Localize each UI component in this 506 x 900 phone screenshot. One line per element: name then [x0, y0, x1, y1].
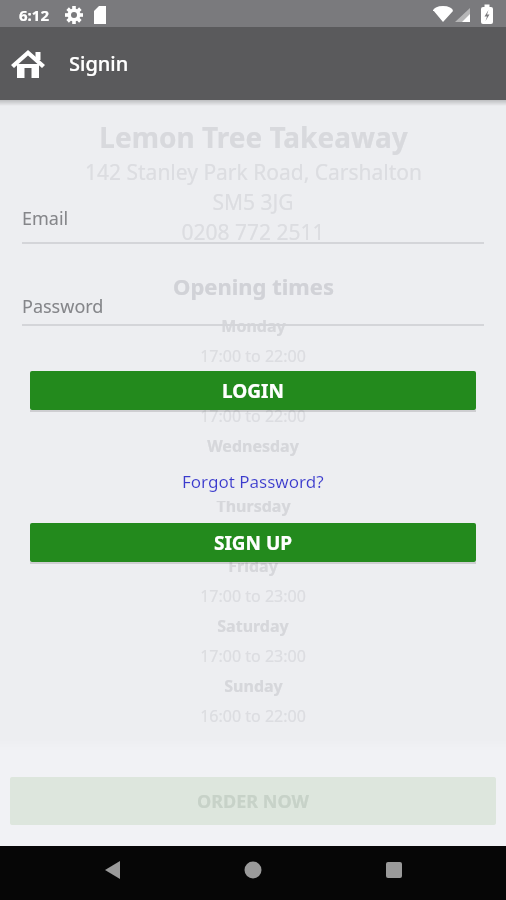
staticText: 17:00 to 23:00 [200, 645, 306, 667]
button[interactable]: Forgot Password? [103, 461, 403, 501]
staticText: Saturday [217, 615, 289, 637]
button[interactable]: LOGIN [30, 371, 476, 410]
staticText: LOGIN [222, 378, 284, 404]
staticText: Wednesday [207, 435, 299, 457]
staticText: Forgot Password? [182, 470, 324, 493]
staticText: Sunday [224, 675, 283, 697]
staticText: Email [22, 206, 69, 231]
button[interactable] [0, 27, 56, 100]
staticText: 6:12 [19, 5, 49, 25]
staticText: 17:00 to 23:00 [200, 585, 306, 607]
staticText: Opening times [173, 271, 334, 301]
staticText: 17:00 to 22:00 [200, 345, 306, 367]
staticText: 16:00 to 22:00 [200, 705, 306, 727]
staticText: ORDER NOW [197, 789, 309, 814]
staticText: Friday [228, 555, 278, 577]
staticText: 17:00 to 22:00 [200, 465, 306, 487]
staticText: SIGN UP [214, 530, 293, 556]
staticText: Tuesday [220, 375, 286, 397]
staticText: Monday [221, 315, 286, 337]
staticText: Thursday [216, 495, 291, 517]
staticText: 0208 772 2511 [181, 218, 325, 247]
staticText: 17:00 to 22:00 [200, 525, 306, 547]
staticText: Password [22, 294, 104, 319]
button[interactable]: ORDER NOW [10, 777, 496, 825]
staticText: 17:00 to 22:00 [200, 405, 306, 427]
staticText: Signin [69, 50, 129, 77]
staticText: Lemon Tree Takeaway [99, 118, 408, 156]
staticText: SM5 3JG [212, 188, 294, 217]
button[interactable]: SIGN UP [30, 523, 476, 562]
staticText: 142 Stanley Park Road, Carshalton [85, 158, 422, 187]
